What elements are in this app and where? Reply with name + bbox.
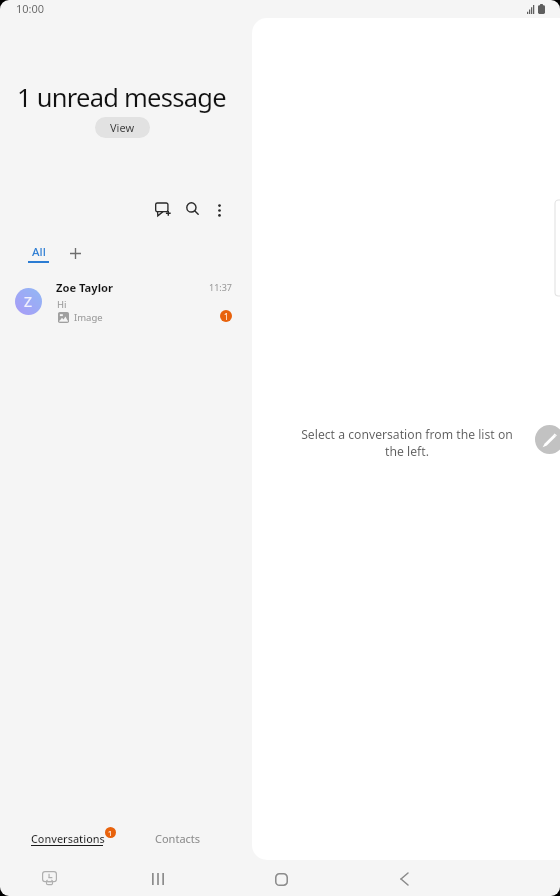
- button[interactable]: New conversation: [146, 193, 178, 225]
- button[interactable]: Screen timeout: [27, 857, 71, 896]
- staticText: Select a conversation from the list on t…: [295, 426, 519, 459]
- staticText: Conversations: [31, 831, 105, 846]
- button[interactable]: More options: [203, 193, 235, 225]
- staticText: 1: [108, 828, 113, 838]
- staticText: All: [32, 244, 46, 260]
- button[interactable]: Z: [0, 272, 252, 330]
- button[interactable]: Back: [382, 857, 426, 896]
- staticText: 1: [224, 311, 229, 322]
- button[interactable]: View: [95, 117, 150, 138]
- button[interactable]: Compose message: [535, 425, 560, 454]
- staticText: 1 unread message: [17, 80, 226, 115]
- button[interactable]: Search: [175, 193, 207, 225]
- staticText: 10:00: [16, 1, 45, 16]
- staticText: Contacts: [155, 831, 201, 846]
- staticText: View: [110, 120, 135, 135]
- button[interactable]: Recent apps: [136, 857, 180, 896]
- staticText: 11:37: [209, 281, 233, 293]
- button[interactable]: Home: [259, 857, 303, 896]
- button[interactable]: Contacts: [147, 823, 209, 851]
- button[interactable]: All: [22, 242, 55, 263]
- button[interactable]: Conversations: [23, 823, 113, 852]
- button[interactable]: Add tab: [61, 238, 89, 266]
- staticText: Hi: [57, 298, 67, 311]
- staticText: Image: [74, 311, 103, 324]
- staticText: Zoe Taylor: [56, 280, 114, 295]
- staticText: Z: [24, 292, 33, 311]
